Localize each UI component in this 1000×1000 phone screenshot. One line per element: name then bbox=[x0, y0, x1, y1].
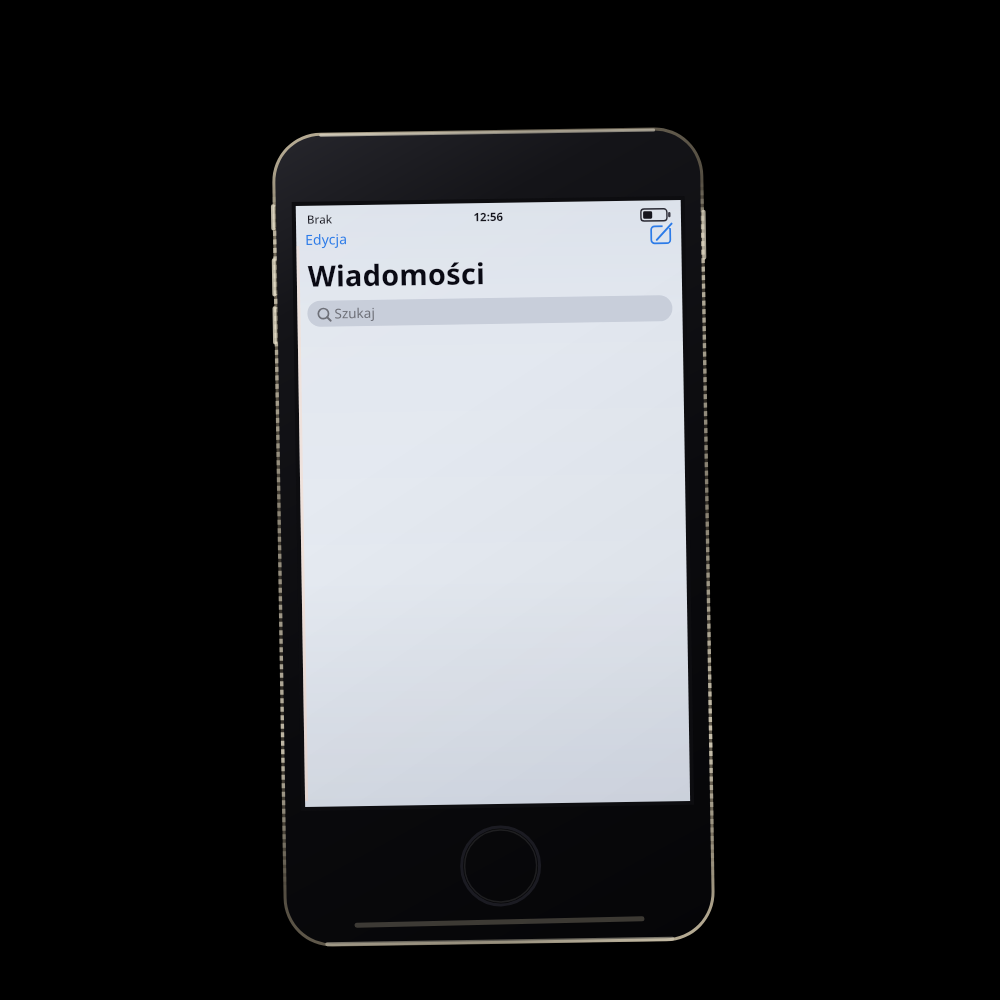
button[interactable]: Wiadomości – ekran aplikacji Wiadomości bbox=[0, 0, 1000, 1000]
